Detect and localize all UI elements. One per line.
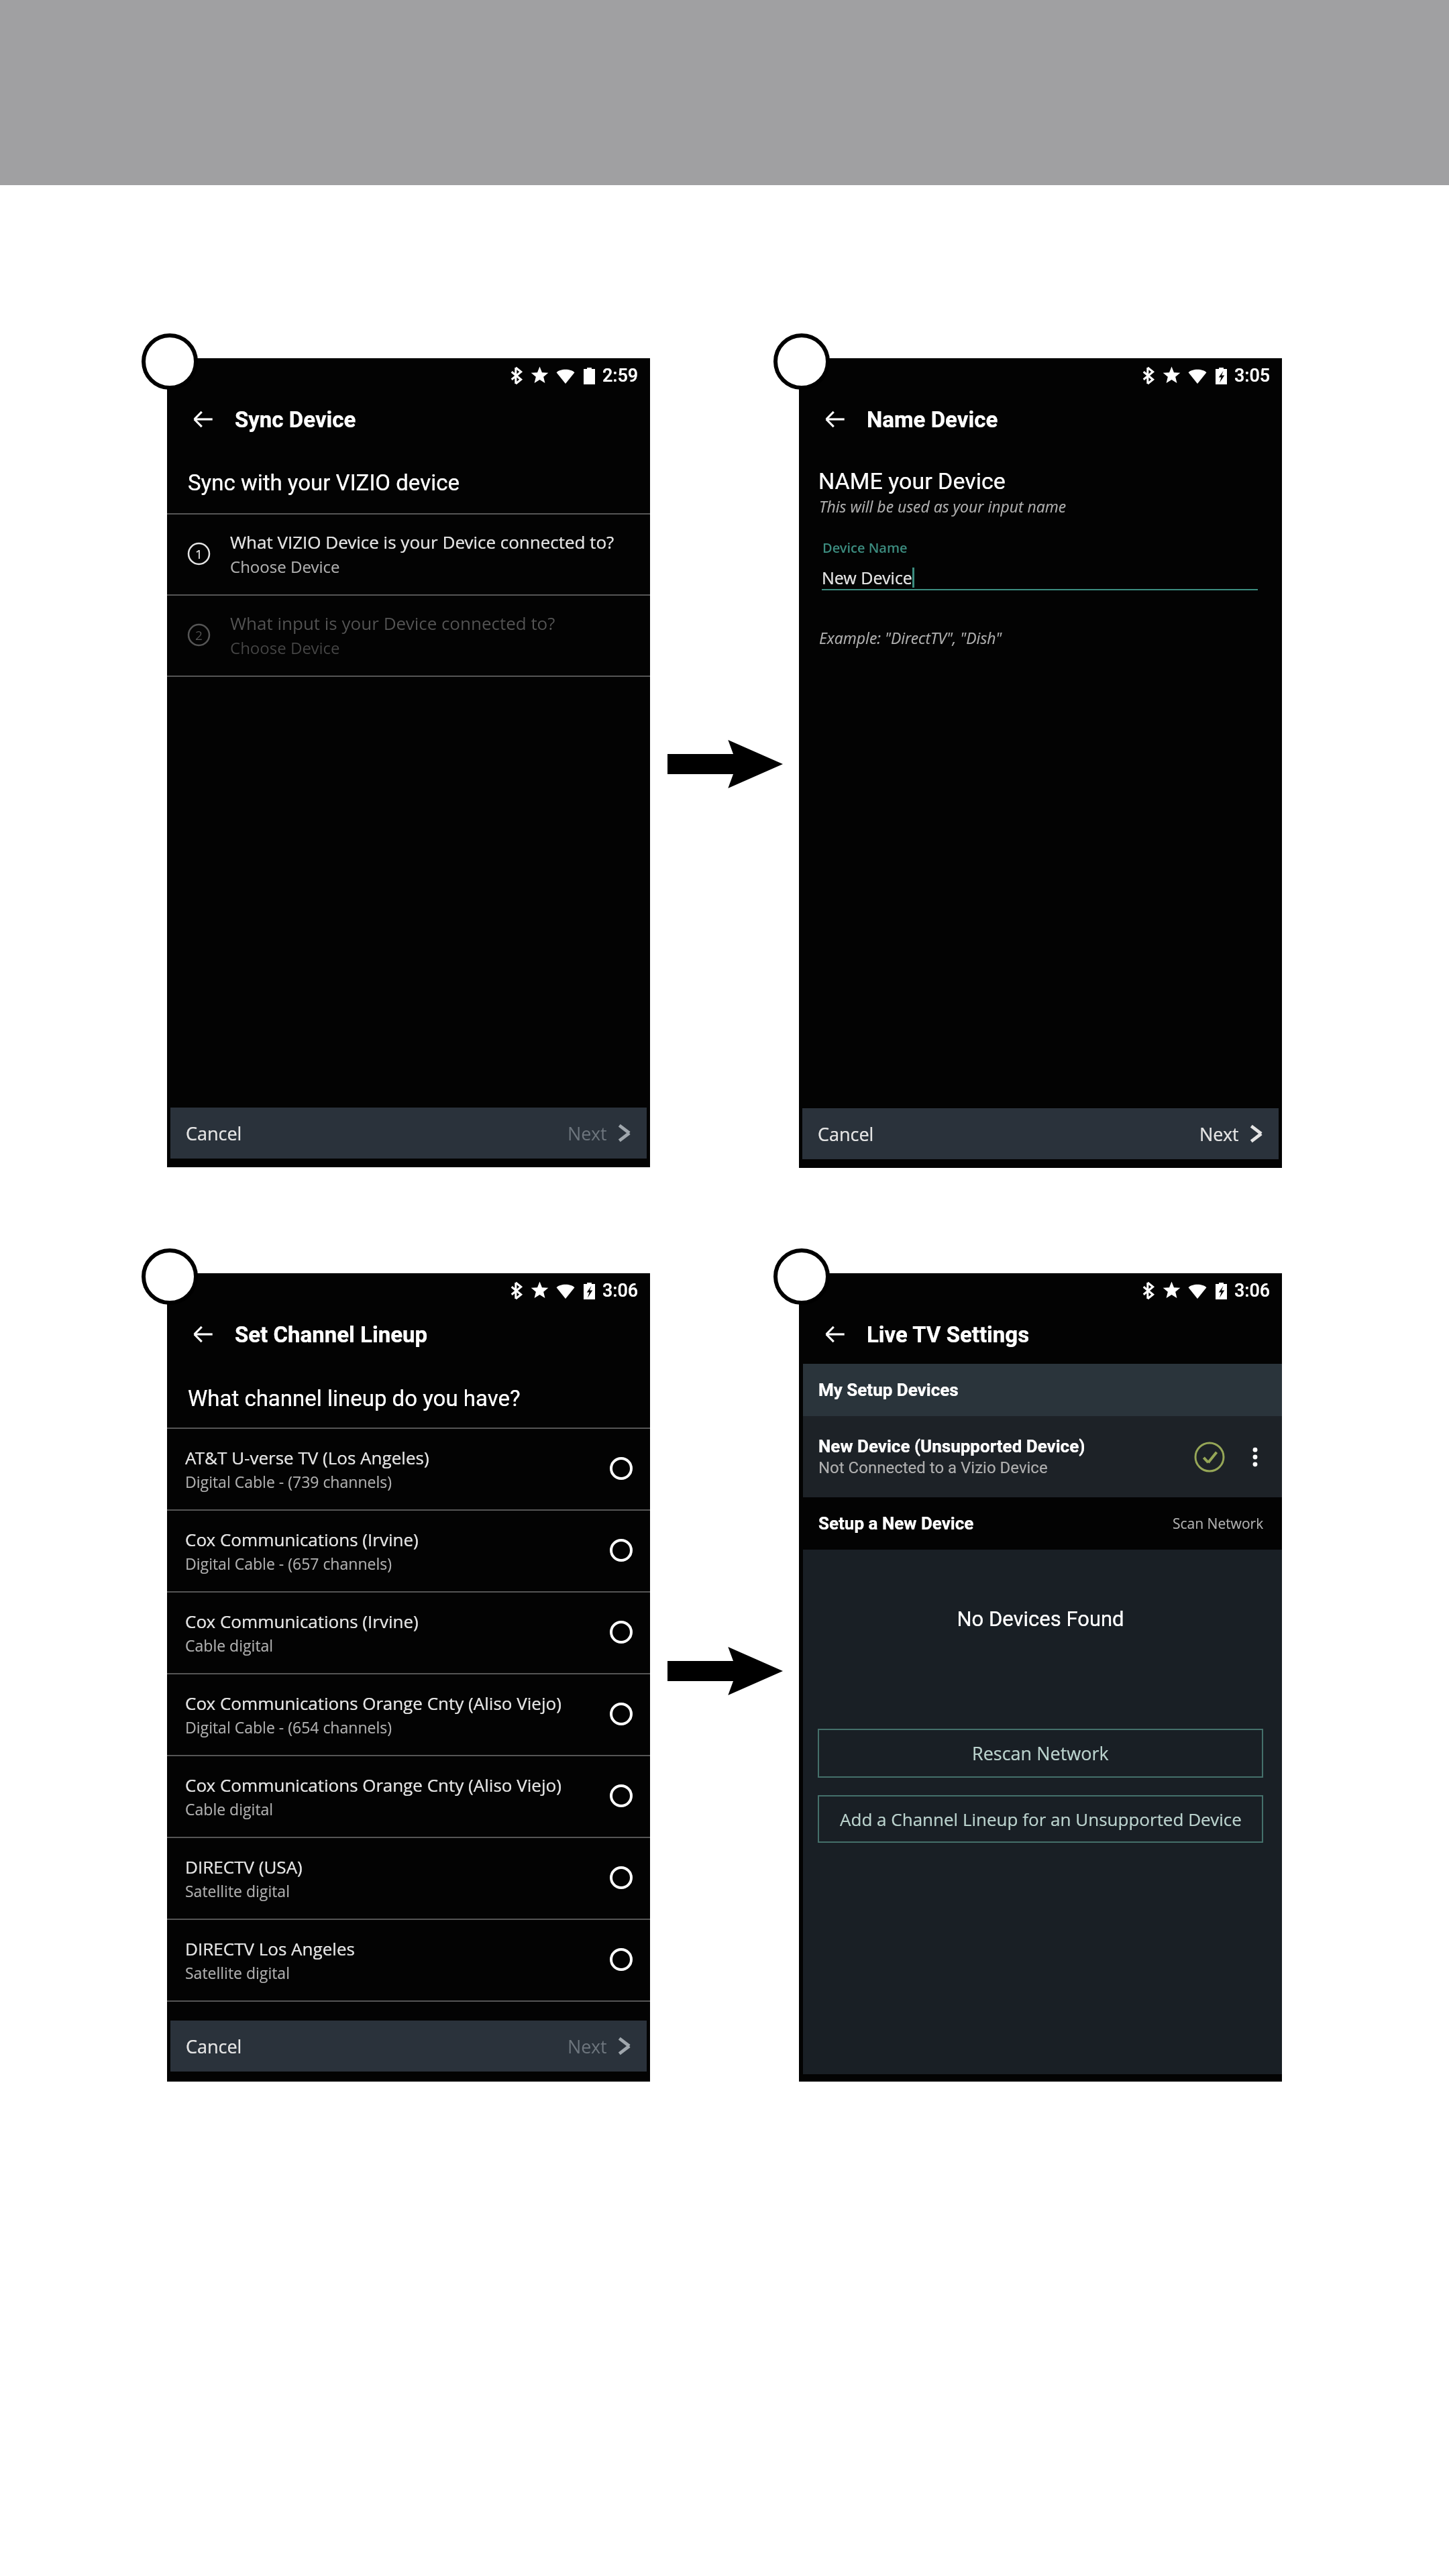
button[interactable]: Next <box>1183 1108 1279 1159</box>
staticText: 3:06 <box>602 1280 639 1301</box>
staticText: Set Channel Lineup <box>235 1322 428 1348</box>
button[interactable]: Rescan Network <box>818 1729 1263 1778</box>
staticText: Choose Device <box>230 555 340 578</box>
button[interactable]: Connected <box>1193 1441 1226 1473</box>
staticText: What input is your Device connected to? <box>230 611 555 635</box>
staticText: Cox Communications Orange Cnty (Aliso Vi… <box>185 1691 561 1715</box>
button[interactable]: Cox Communications (Irvine) <box>167 1509 650 1591</box>
staticText: Cancel <box>186 2034 242 2059</box>
staticText: Rescan Network <box>972 1741 1109 1766</box>
button[interactable]: Back <box>182 398 223 440</box>
staticText: Setup a New Device <box>818 1513 1173 1534</box>
button[interactable]: New Device (Unsupported Device) <box>799 1416 1282 1497</box>
staticText: Cancel <box>186 1121 242 1146</box>
staticText: Cox Communications (Irvine) <box>185 1609 419 1633</box>
staticText: Cancel <box>818 1122 874 1146</box>
staticText: New Device (Unsupported Device) <box>818 1436 1085 1456</box>
button[interactable]: DIRECTV (USA) <box>167 1837 650 1919</box>
button[interactable]: Cox Communications Orange Cnty (Aliso Vi… <box>167 1673 650 1755</box>
staticText: Next <box>568 1121 607 1146</box>
staticText: Digital Cable - (657 channels) <box>185 1553 392 1574</box>
staticText: Satellite digital <box>185 1880 290 1901</box>
button[interactable]: Next <box>551 2021 647 2072</box>
staticText: Sync Device <box>235 407 356 433</box>
staticText: Next <box>1199 1122 1239 1146</box>
button[interactable]: Setup a New Device <box>799 1497 1282 1550</box>
staticText: New Device <box>822 566 912 589</box>
staticText: Choose Device <box>230 637 340 659</box>
button[interactable]: Cancel <box>802 1108 890 1159</box>
staticText: 2:59 <box>602 365 639 386</box>
staticText: Not Connected to a Vizio Device <box>818 1458 1048 1477</box>
staticText: Cable digital <box>185 1799 274 1819</box>
staticText: Example: "DirectTV", "Dish" <box>819 627 1002 648</box>
staticText: DIRECTV (USA) <box>185 1855 303 1878</box>
staticText: Cox Communications (Irvine) <box>185 1527 419 1551</box>
staticText: Cable digital <box>185 1635 274 1656</box>
staticText: Digital Cable - (654 channels) <box>185 1717 392 1737</box>
button[interactable]: 2 <box>167 594 650 676</box>
staticText: Scan Network <box>1173 1514 1264 1534</box>
staticText: Live TV Settings <box>867 1322 1030 1348</box>
button[interactable]: 1 <box>167 513 650 594</box>
button[interactable]: Back <box>814 1313 855 1355</box>
button[interactable]: DIRECTV Los Angeles <box>167 1919 650 2000</box>
staticText: What VIZIO Device is your Device connect… <box>230 530 614 553</box>
staticText: Cox Communications Orange Cnty (Aliso Vi… <box>185 1773 561 1796</box>
staticText: Digital Cable - (739 channels) <box>185 1471 392 1492</box>
staticText: What channel lineup do you have? <box>188 1385 521 1411</box>
button[interactable]: Cox Communications Orange Cnty (Aliso Vi… <box>167 1755 650 1837</box>
staticText: 3:05 <box>1234 365 1271 386</box>
staticText: AT&T U-verse TV (Los Angeles) <box>185 1446 429 1469</box>
button[interactable]: Back <box>814 398 855 440</box>
button[interactable]: Back <box>182 1313 223 1355</box>
staticText: This will be used as your input name <box>819 496 1067 517</box>
staticText: Sync with your VIZIO device <box>188 470 460 496</box>
button[interactable]: Cox Communications (Irvine) <box>167 1591 650 1673</box>
button[interactable]: Next <box>551 1108 647 1159</box>
button[interactable]: Add a Channel Lineup for an Unsupported … <box>818 1795 1263 1843</box>
staticText: Name Device <box>867 407 998 433</box>
button[interactable]: Cancel <box>170 2021 258 2072</box>
button[interactable]: More options <box>1243 1445 1267 1469</box>
staticText: Add a Channel Lineup for an Unsupported … <box>840 1807 1242 1831</box>
button[interactable]: Cancel <box>170 1108 258 1159</box>
button[interactable]: AT&T U-verse TV (Los Angeles) <box>167 1428 650 1509</box>
staticText: My Setup Devices <box>818 1380 959 1400</box>
staticText: DIRECTV Los Angeles <box>185 1937 355 1960</box>
staticText: 3:06 <box>1234 1280 1271 1301</box>
staticText: NAME your Device <box>818 468 1006 494</box>
staticText: Satellite digital <box>185 1962 290 1983</box>
staticText: No Devices Found <box>957 1607 1124 1631</box>
staticText: Device Name <box>822 539 908 557</box>
staticText: 1 <box>195 545 203 563</box>
staticText: Next <box>568 2034 607 2059</box>
staticText: 2 <box>195 627 203 644</box>
